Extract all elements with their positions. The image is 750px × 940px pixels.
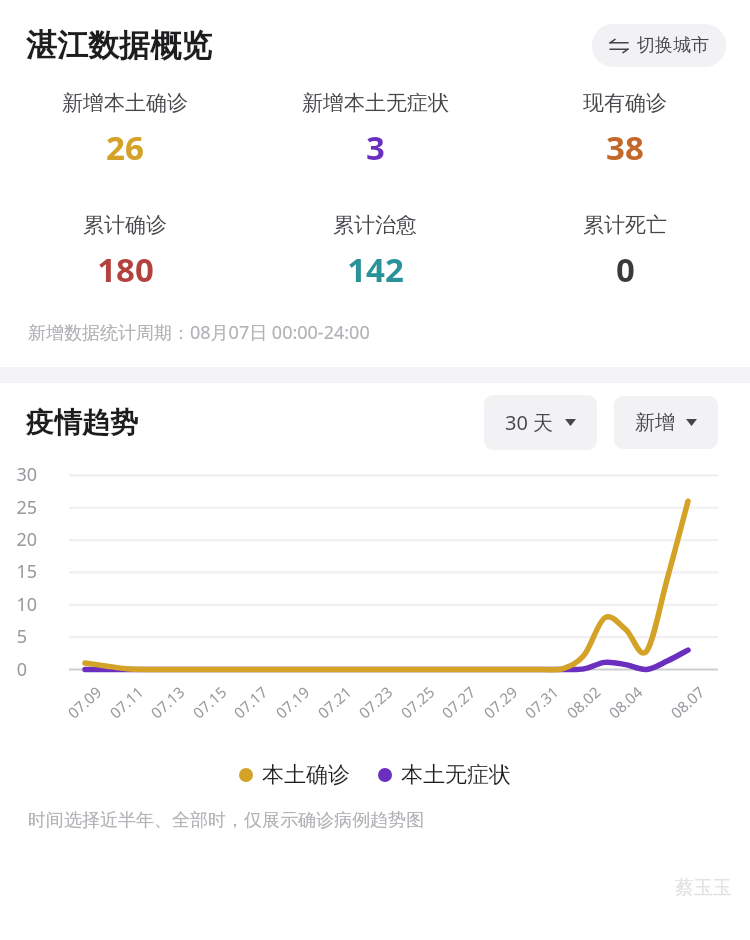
staticText: 10 xyxy=(16,592,37,617)
staticText: 07.11 xyxy=(105,681,148,722)
staticText: 07.15 xyxy=(188,681,231,722)
staticText: 180 xyxy=(97,247,154,292)
button[interactable]: 新增 xyxy=(614,396,718,449)
button[interactable]: Switch city xyxy=(592,24,726,67)
staticText: 新增 xyxy=(635,410,675,435)
staticText: 切换城市 xyxy=(637,34,709,57)
button[interactable]: 30 天 xyxy=(484,395,597,450)
staticText: 3 xyxy=(366,125,385,170)
staticText: 07.29 xyxy=(479,681,522,722)
staticText: 30 xyxy=(16,462,37,487)
button[interactable]: 本土确诊 xyxy=(239,761,350,789)
staticText: 本土无症状 xyxy=(401,761,511,789)
staticText: 07.13 xyxy=(146,681,189,722)
staticText: 新增本土确诊 xyxy=(62,90,188,116)
staticText: 累计确诊 xyxy=(83,212,167,238)
staticText: 15 xyxy=(16,559,37,584)
staticText: 07.27 xyxy=(437,681,480,722)
staticText: 累计治愈 xyxy=(333,212,417,238)
staticText: 08.04 xyxy=(604,681,647,722)
staticText: 07.19 xyxy=(271,681,314,722)
staticText: 新增数据统计周期：08月07日 00:00-24:00 xyxy=(28,320,370,345)
staticText: 30 天 xyxy=(505,409,554,436)
staticText: 蔡玉玉 xyxy=(675,876,732,900)
staticText: 25 xyxy=(16,495,37,520)
staticText: 5 xyxy=(16,624,27,649)
staticText: 累计死亡 xyxy=(583,212,667,238)
staticText: 0 xyxy=(616,247,635,292)
staticText: 38 xyxy=(606,125,644,170)
staticText: 现有确诊 xyxy=(583,90,667,116)
button[interactable]: 本土无症状 xyxy=(378,761,511,789)
staticText: 07.17 xyxy=(229,681,272,722)
staticText: 0 xyxy=(16,657,27,682)
staticText: 本土确诊 xyxy=(262,761,350,789)
staticText: 08.02 xyxy=(562,681,605,722)
staticText: 08.07 xyxy=(666,681,709,722)
staticText: 湛江数据概览 xyxy=(26,26,212,65)
staticText: 07.31 xyxy=(520,681,563,722)
staticText: 142 xyxy=(347,247,404,292)
staticText: 时间选择近半年、全部时，仅展示确诊病例趋势图 xyxy=(28,809,424,832)
staticText: 26 xyxy=(106,125,144,170)
staticText: 新增本土无症状 xyxy=(302,90,449,116)
other: Switch city xyxy=(609,36,629,56)
staticText: 20 xyxy=(16,527,37,552)
staticText: 疫情趋势 xyxy=(26,405,138,440)
staticText: 07.25 xyxy=(396,681,439,722)
staticText: 07.09 xyxy=(63,681,106,722)
staticText: 07.23 xyxy=(354,681,397,722)
staticText: 07.21 xyxy=(313,681,356,722)
